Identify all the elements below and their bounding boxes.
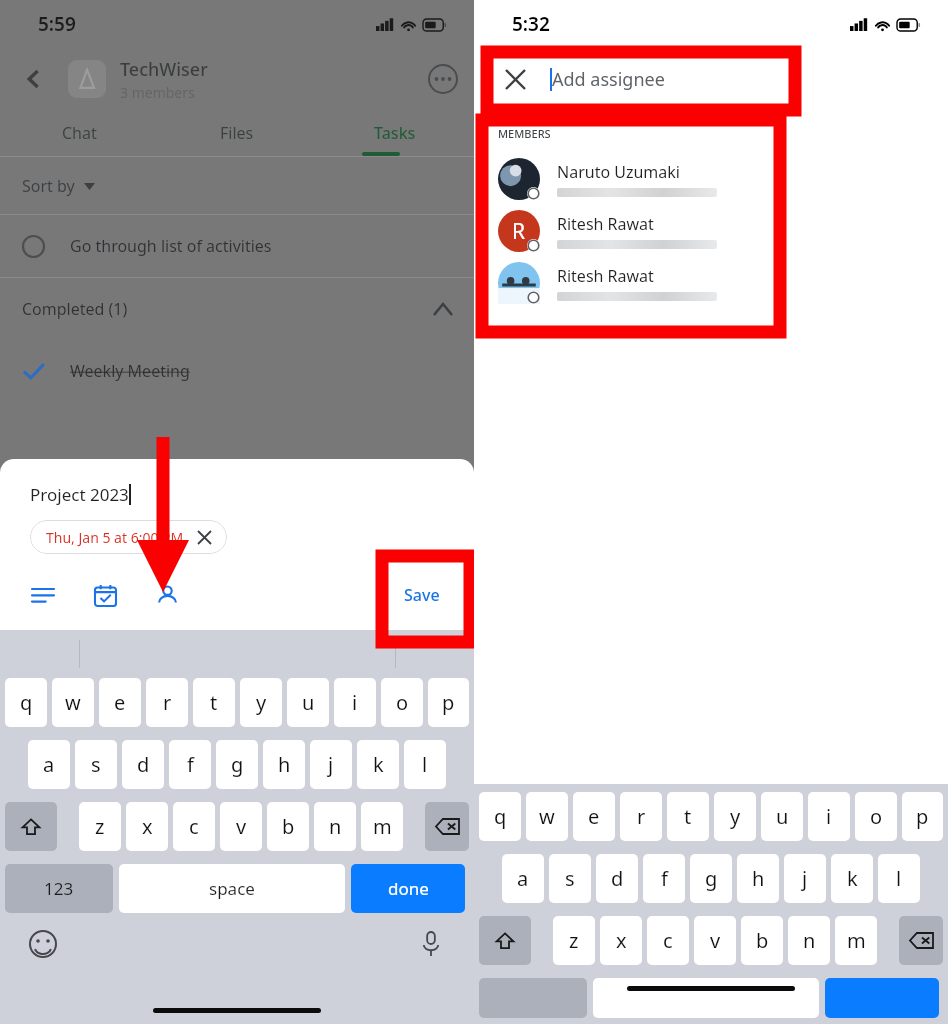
button[interactable]: space	[119, 864, 345, 913]
button[interactable]: o	[855, 792, 897, 841]
button[interactable]: t	[667, 792, 709, 841]
button[interactable]: o	[381, 678, 423, 727]
staticText: MEMBERS	[498, 126, 551, 141]
button[interactable]: Sort by	[0, 157, 474, 214]
button[interactable]: Dictate	[414, 927, 448, 961]
button[interactable]: w	[52, 678, 94, 727]
button[interactable]: j	[784, 854, 826, 903]
staticText: Files	[220, 122, 254, 144]
button[interactable]: p	[902, 792, 943, 841]
button[interactable]: i	[334, 678, 376, 727]
button[interactable]: Backspace	[425, 802, 469, 851]
button[interactable]: b	[741, 916, 783, 965]
button[interactable]: h	[737, 854, 779, 903]
button[interactable]: v	[694, 916, 736, 965]
staticText: g	[705, 865, 718, 892]
button[interactable]: y	[714, 792, 756, 841]
button[interactable]: Thu, Jan 5 at 6:00 PM	[30, 520, 227, 554]
button[interactable]: c	[173, 802, 215, 851]
button[interactable]: 123	[5, 864, 113, 913]
button[interactable]: Set date	[88, 578, 122, 612]
button[interactable]: e	[573, 792, 615, 841]
button[interactable]: m	[361, 802, 403, 851]
button[interactable]: Shift	[479, 916, 531, 965]
button[interactable]: f	[643, 854, 685, 903]
button[interactable]: Completed (1)	[0, 278, 474, 340]
button[interactable]: q	[5, 678, 47, 727]
button[interactable]: n	[314, 802, 356, 851]
button[interactable]: R	[474, 205, 948, 257]
staticText: j	[802, 865, 808, 892]
button[interactable]: k	[357, 740, 399, 789]
staticText: j	[328, 751, 334, 778]
button[interactable]: g	[690, 854, 732, 903]
button[interactable]: Done	[825, 978, 939, 1018]
button[interactable]: Close	[474, 54, 948, 104]
button[interactable]: p	[428, 678, 469, 727]
staticText: x	[616, 927, 627, 954]
button[interactable]: z	[79, 802, 121, 851]
button[interactable]: e	[99, 678, 141, 727]
button[interactable]: s	[75, 740, 117, 789]
staticText: space	[209, 877, 255, 900]
button[interactable]: a	[502, 854, 544, 903]
button[interactable]: t	[193, 678, 235, 727]
button[interactable]: f	[169, 740, 211, 789]
staticText: 3 members	[120, 83, 195, 102]
button[interactable]: Shift	[5, 802, 57, 851]
button[interactable]: s	[549, 854, 591, 903]
button[interactable]: Space	[593, 978, 819, 1018]
button[interactable]: w	[526, 792, 568, 841]
button[interactable]: m	[835, 916, 877, 965]
button[interactable]: k	[831, 854, 873, 903]
button[interactable]: Add assignee	[150, 578, 184, 612]
button[interactable]: More options	[426, 62, 460, 96]
button[interactable]: i	[808, 792, 850, 841]
button[interactable]: y	[240, 678, 282, 727]
button[interactable]: c	[647, 916, 689, 965]
staticText: k	[847, 865, 858, 892]
button[interactable]: u	[287, 678, 329, 727]
staticText: k	[373, 751, 384, 778]
button[interactable]: r	[146, 678, 188, 727]
button[interactable]: l	[404, 740, 446, 789]
button[interactable]: Ritesh Rawat	[474, 257, 948, 309]
staticText: Chat	[62, 122, 97, 144]
staticText: z	[569, 927, 579, 954]
button[interactable]: j	[310, 740, 352, 789]
button[interactable]: l	[878, 854, 920, 903]
button[interactable]: u	[761, 792, 803, 841]
button[interactable]: x	[126, 802, 168, 851]
button[interactable]: d	[122, 740, 164, 789]
staticText: e	[588, 803, 600, 830]
button[interactable]: Tasks	[316, 110, 474, 156]
button[interactable]: Back	[14, 59, 54, 99]
button[interactable]: Close	[498, 62, 532, 96]
button[interactable]: h	[263, 740, 305, 789]
button[interactable]: Go through list of activities	[0, 215, 474, 277]
button[interactable]: Backspace	[899, 916, 943, 965]
button[interactable]: z	[553, 916, 595, 965]
button[interactable]: b	[267, 802, 309, 851]
button[interactable]: n	[788, 916, 830, 965]
staticText: c	[189, 813, 199, 840]
button[interactable]: x	[600, 916, 642, 965]
staticText: Ritesh Rawat	[557, 265, 654, 287]
button[interactable]: a	[28, 740, 70, 789]
button[interactable]: v	[220, 802, 262, 851]
button[interactable]: Naruto Uzumaki	[474, 153, 948, 205]
staticText: R	[512, 217, 526, 246]
button[interactable]: Weekly Meeting	[0, 340, 474, 402]
button[interactable]: r	[620, 792, 662, 841]
button[interactable]: Chat	[0, 110, 158, 156]
button[interactable]: Emoji	[26, 927, 60, 961]
button[interactable]: Files	[158, 110, 316, 156]
button[interactable]: Save	[390, 576, 454, 614]
button[interactable]: done	[351, 864, 465, 913]
staticText: z	[95, 813, 105, 840]
button[interactable]: q	[479, 792, 521, 841]
button[interactable]: g	[216, 740, 258, 789]
button[interactable]: Details	[26, 578, 60, 612]
button[interactable]: d	[596, 854, 638, 903]
